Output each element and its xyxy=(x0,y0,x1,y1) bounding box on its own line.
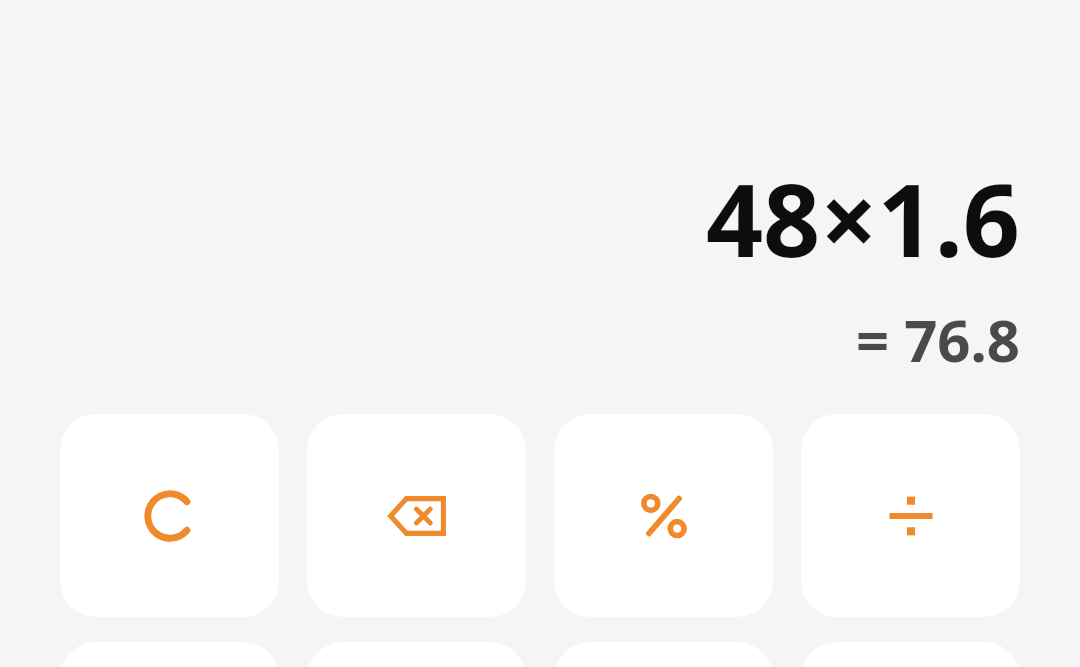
staticText: = 76.8 xyxy=(855,300,1020,379)
button[interactable]: Clear xyxy=(60,414,279,617)
button[interactable]: Divide xyxy=(801,414,1020,617)
button[interactable]: Percent xyxy=(554,414,773,617)
button[interactable]: Backspace xyxy=(307,414,526,617)
staticText: 48×1.6 xyxy=(705,150,1020,286)
